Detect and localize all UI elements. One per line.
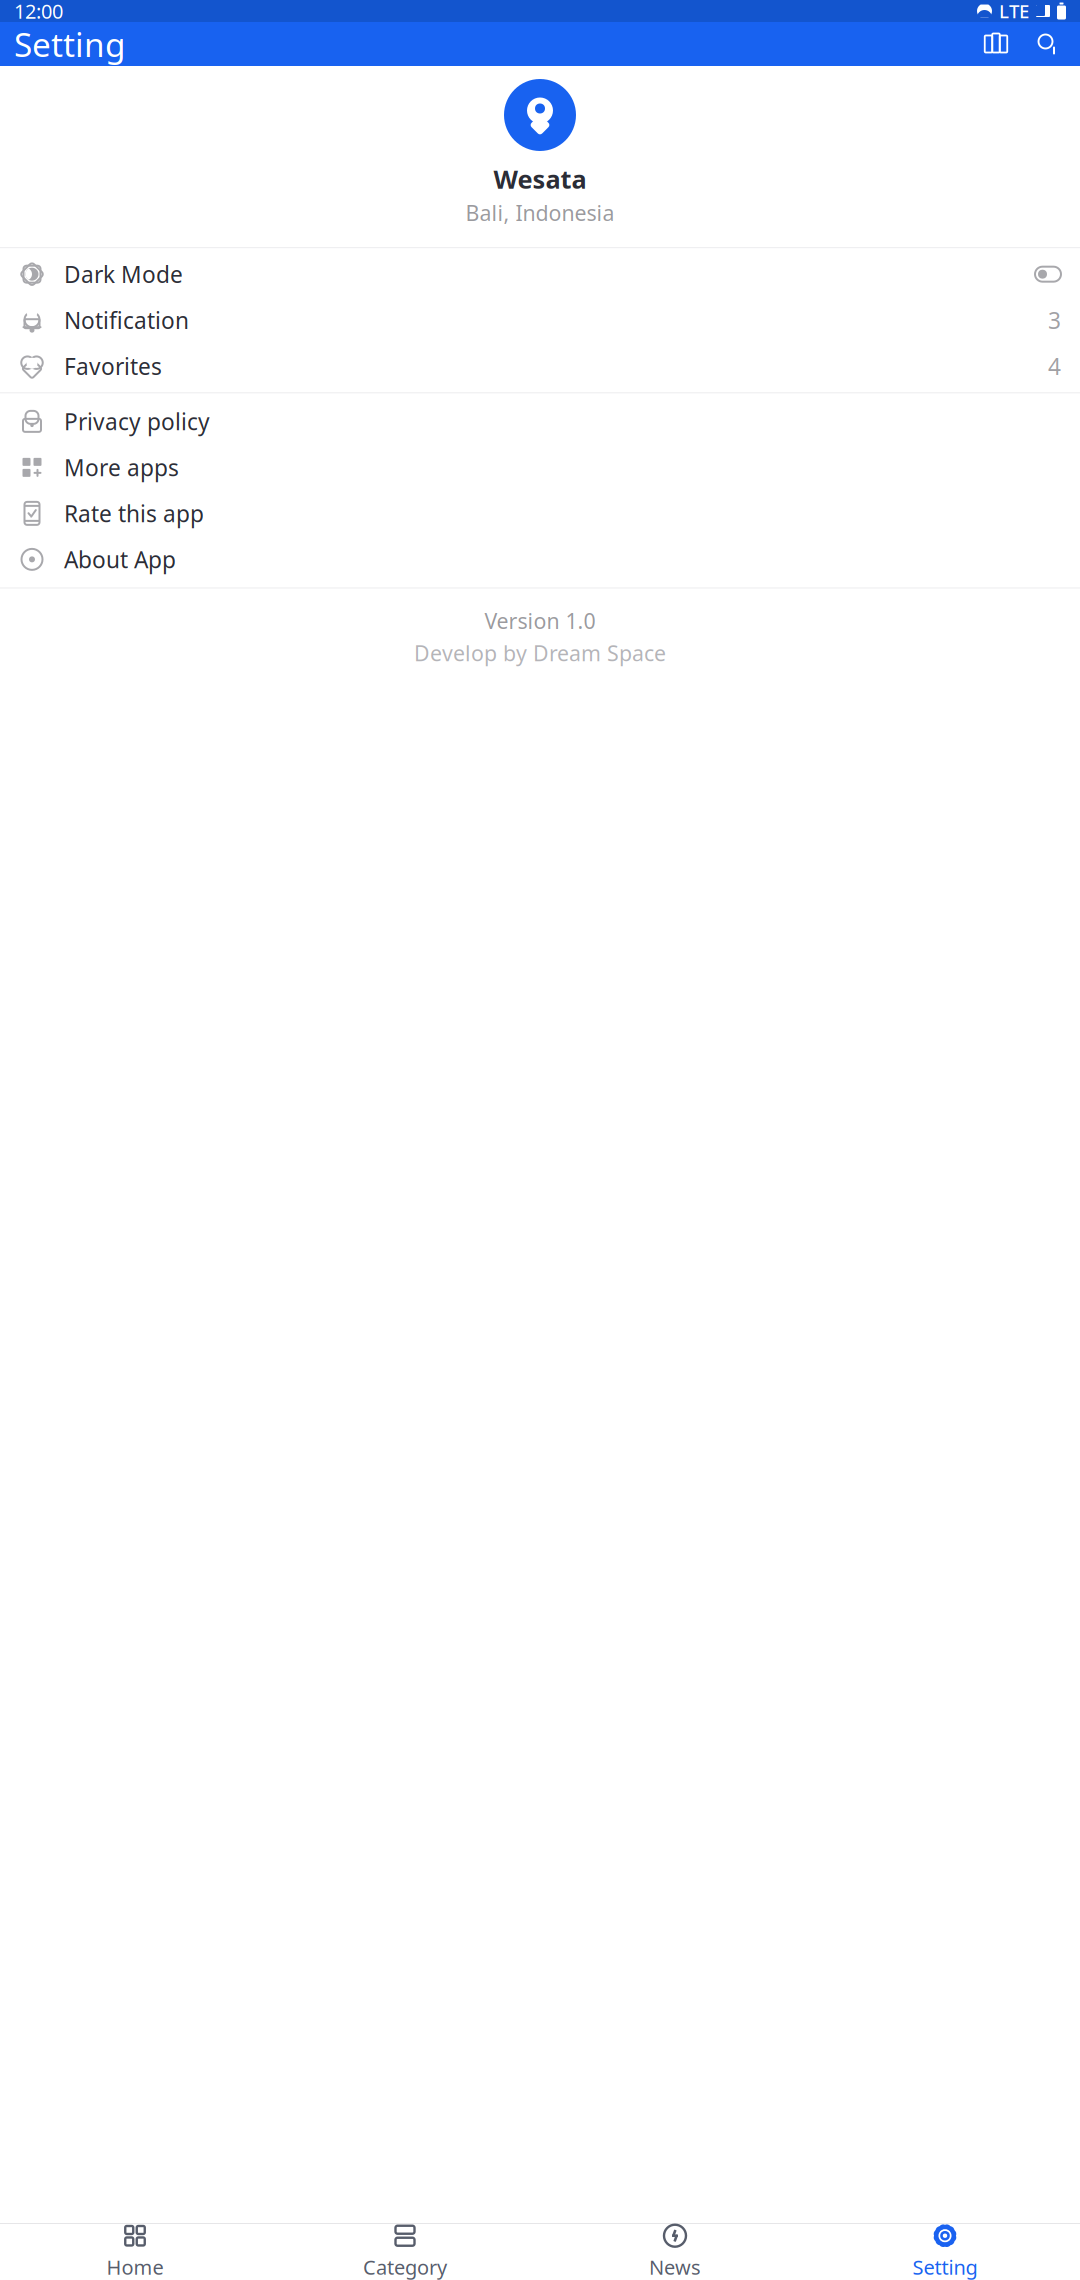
button[interactable]: More apps	[0, 444, 1080, 490]
button[interactable]: Setting	[810, 2215, 1080, 2280]
staticText: Privacy policy	[64, 406, 210, 436]
staticText: Home	[106, 2254, 163, 2280]
staticText: Favorites	[64, 351, 162, 381]
staticText: Dark Mode	[64, 259, 183, 289]
staticText: Notification	[64, 305, 189, 335]
staticText: 4	[1048, 351, 1061, 381]
button[interactable]: Home	[0, 2215, 270, 2280]
staticText: LTE	[999, 0, 1029, 23]
staticText: Develop by Dream Space	[414, 639, 666, 667]
button[interactable]: Dark Mode	[0, 251, 1080, 297]
staticText: More apps	[64, 452, 179, 482]
button[interactable]: About App	[0, 536, 1080, 582]
staticText: Category	[363, 2254, 447, 2280]
staticText: About App	[64, 544, 176, 574]
staticText: 12:00	[14, 0, 63, 24]
staticText: 3	[1048, 305, 1061, 335]
button[interactable]: Favorites	[0, 343, 1080, 389]
button[interactable]: Category	[270, 2215, 540, 2280]
button[interactable]: Map	[974, 22, 1018, 66]
staticText: Version 1.0	[484, 607, 595, 635]
staticText: Setting	[14, 22, 126, 66]
button[interactable]: Rate this app	[0, 490, 1080, 536]
staticText: Setting	[912, 2254, 977, 2280]
button[interactable]: Notification	[0, 297, 1080, 343]
button[interactable]: Search	[1026, 22, 1070, 66]
staticText: News	[649, 2254, 701, 2280]
staticText: Rate this app	[64, 498, 204, 528]
staticText: Bali, Indonesia	[465, 199, 614, 227]
button[interactable]: News	[540, 2215, 810, 2280]
button[interactable]: Privacy policy	[0, 398, 1080, 444]
staticText: Wesata	[493, 162, 586, 196]
